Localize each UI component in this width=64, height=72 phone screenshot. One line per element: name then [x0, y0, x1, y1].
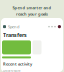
staticText: Recent activity	[3, 61, 32, 67]
button[interactable]: Menu	[3, 25, 6, 28]
staticText: reach your goals	[16, 11, 48, 17]
staticText: Spend smarter and	[12, 5, 51, 10]
staticText: Spend	[8, 24, 19, 29]
staticText: Grocery store	[3, 69, 21, 72]
button[interactable]: Profile	[58, 25, 61, 28]
staticText: Transfers	[3, 31, 27, 38]
